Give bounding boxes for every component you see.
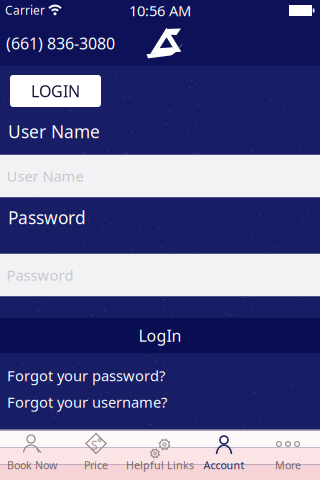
button[interactable]: S — [64, 430, 128, 480]
button[interactable]: Password — [0, 254, 320, 296]
button[interactable]: Account — [192, 430, 256, 480]
staticText: Password — [6, 265, 73, 285]
button[interactable]: Forgot your password? — [0, 365, 320, 385]
button[interactable]: More — [256, 430, 320, 480]
staticText: (661) 836-3080 — [6, 33, 115, 54]
staticText: S — [91, 437, 98, 453]
staticText: Carrier — [5, 2, 45, 18]
button[interactable]: Forgot your username? — [0, 392, 320, 412]
button[interactable]: User Name — [0, 155, 320, 197]
staticText: User Name — [8, 120, 100, 143]
button[interactable]: LOGIN — [10, 75, 101, 107]
staticText: Forgot your username? — [7, 392, 167, 412]
staticText: User Name — [6, 166, 83, 186]
button[interactable]: Helpful Links — [128, 430, 192, 480]
staticText: Forgot your password? — [7, 366, 165, 385]
button[interactable]: LogIn — [0, 318, 320, 353]
staticText: LogIn — [138, 325, 181, 346]
staticText: Account — [203, 458, 244, 472]
staticText: Helpful Links — [126, 458, 194, 472]
staticText: Price — [84, 458, 108, 472]
staticText: More — [275, 458, 301, 472]
staticText: Password — [8, 206, 86, 229]
staticText: 10:56 AM — [129, 1, 191, 20]
staticText: LOGIN — [31, 80, 80, 102]
staticText: Book Now — [7, 458, 57, 472]
button[interactable]: Book Now — [0, 430, 64, 480]
